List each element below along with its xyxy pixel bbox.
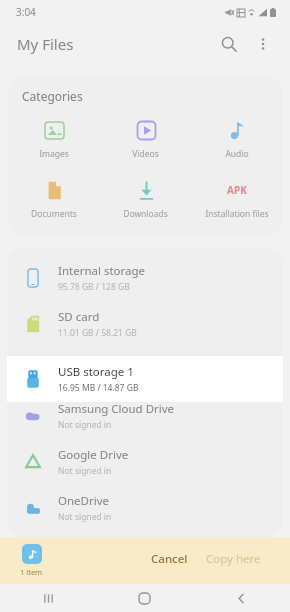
button[interactable]: APK [191, 176, 282, 222]
staticText: Not signed in [58, 511, 112, 523]
staticText: APK [227, 183, 247, 197]
button[interactable]: Cancel [141, 543, 198, 575]
button[interactable]: Recents [0, 584, 96, 612]
staticText: Downloads [123, 208, 168, 220]
staticText: USB storage 1 [58, 364, 134, 380]
button[interactable]: Images [8, 116, 100, 162]
button[interactable]: Internal storage [8, 255, 282, 301]
button[interactable]: OneDrive [8, 485, 282, 531]
button[interactable]: SD card [8, 301, 282, 347]
staticText: Installation files [205, 208, 269, 220]
button[interactable]: Downloads [100, 176, 191, 222]
staticText: Samsung Cloud Drive [58, 401, 175, 417]
staticText: SD card [58, 309, 100, 325]
staticText: Audio [225, 148, 249, 160]
button[interactable]: USB storage 1 [7, 356, 283, 402]
staticText: 16.95 MB / 14.87 GB [58, 373, 139, 385]
button[interactable]: Back [193, 584, 290, 612]
staticText: OneDrive [58, 493, 110, 509]
staticText: Videos [132, 148, 159, 160]
staticText: Copy here [206, 551, 261, 567]
button[interactable]: Documents [8, 176, 100, 222]
button[interactable]: Search [212, 27, 246, 61]
button[interactable]: More options [246, 27, 280, 61]
staticText: 95.78 GB / 128 GB [58, 281, 130, 293]
staticText: 11.01 GB / 58.21 GB [58, 327, 137, 339]
staticText: Internal storage [58, 263, 146, 279]
staticText: Documents [31, 208, 77, 220]
staticText: Not signed in [58, 465, 112, 477]
button[interactable]: Google Drive [8, 439, 282, 485]
staticText: Categories [22, 88, 83, 104]
staticText: My Files [17, 34, 74, 54]
button[interactable]: Samsung Cloud Drive [8, 393, 282, 439]
staticText: Google Drive [58, 447, 129, 463]
staticText: 1 item [20, 567, 43, 577]
staticText: Not signed in [58, 419, 112, 431]
staticText: Images [39, 148, 69, 160]
staticText: Cancel [151, 551, 188, 567]
button[interactable]: Home [96, 584, 193, 612]
button[interactable]: USB storage 1 [8, 347, 282, 393]
staticText: USB storage 1 [58, 355, 134, 371]
staticText: 16.95 MB / 14.87 GB [58, 382, 139, 394]
button[interactable]: Copy here [198, 543, 269, 575]
staticText: 3:04 [16, 5, 36, 19]
button[interactable]: Videos [100, 116, 191, 162]
button[interactable]: Audio [191, 116, 282, 162]
